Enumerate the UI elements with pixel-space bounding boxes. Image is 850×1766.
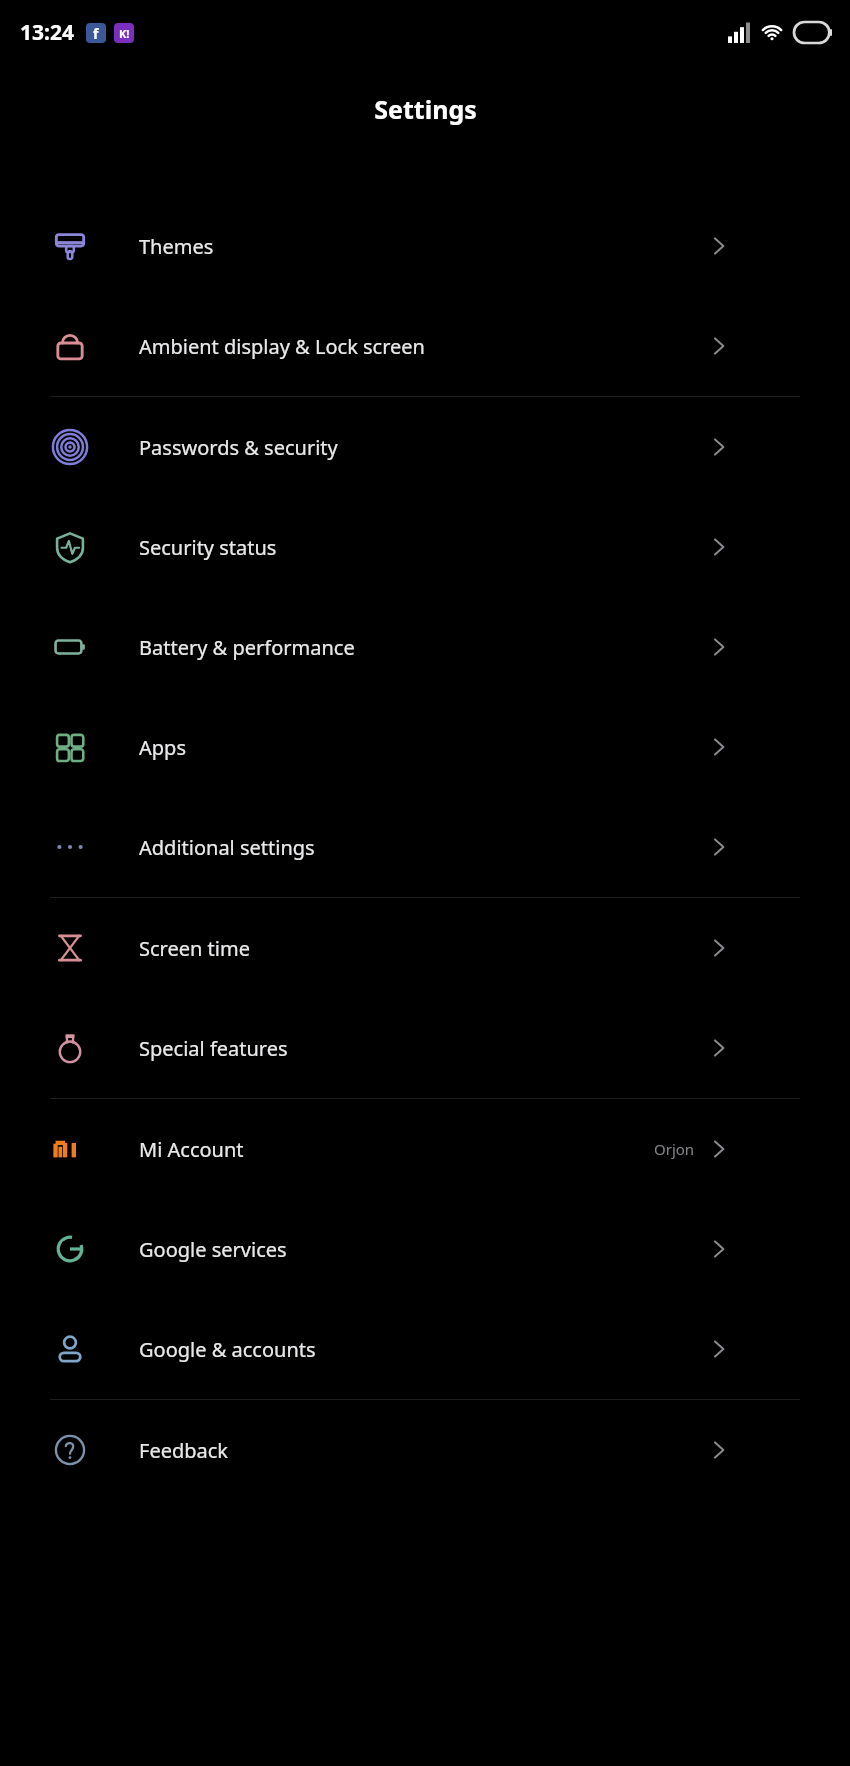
staticText: Special features — [139, 1035, 288, 1062]
staticText: Orjon — [654, 1139, 695, 1159]
staticText: Ambient display & Lock screen — [139, 333, 425, 360]
button[interactable]: Ambient display & Lock screen — [0, 296, 850, 396]
staticText: Battery & performance — [139, 634, 355, 661]
button[interactable]: Special features — [0, 998, 850, 1098]
button[interactable]: Google & accounts — [0, 1299, 850, 1399]
button[interactable]: Google services — [0, 1199, 850, 1299]
staticText: f — [93, 24, 99, 43]
button[interactable]: Security status — [0, 497, 850, 597]
staticText: Security status — [139, 534, 277, 561]
staticText: Screen time — [139, 935, 250, 962]
staticText: K! — [119, 26, 130, 41]
staticText: Settings — [374, 92, 477, 126]
staticText: 13:24 — [20, 18, 74, 47]
button[interactable]: Passwords & security — [0, 397, 850, 497]
staticText: Feedback — [139, 1437, 229, 1464]
button[interactable]: Themes — [0, 196, 850, 296]
staticText: Additional settings — [139, 834, 315, 861]
button[interactable]: Battery & performance — [0, 597, 850, 697]
staticText: Google services — [139, 1236, 287, 1263]
staticText: Google & accounts — [139, 1336, 316, 1363]
button[interactable]: Mi Account — [0, 1099, 850, 1199]
staticText: Apps — [139, 734, 186, 761]
button[interactable]: Screen time — [0, 898, 850, 998]
staticText: Themes — [139, 233, 214, 260]
button[interactable]: Additional settings — [0, 797, 850, 897]
button[interactable]: Apps — [0, 697, 850, 797]
staticText: Mi Account — [139, 1136, 244, 1163]
staticText: Passwords & security — [139, 434, 338, 461]
button[interactable]: Feedback — [0, 1400, 850, 1500]
